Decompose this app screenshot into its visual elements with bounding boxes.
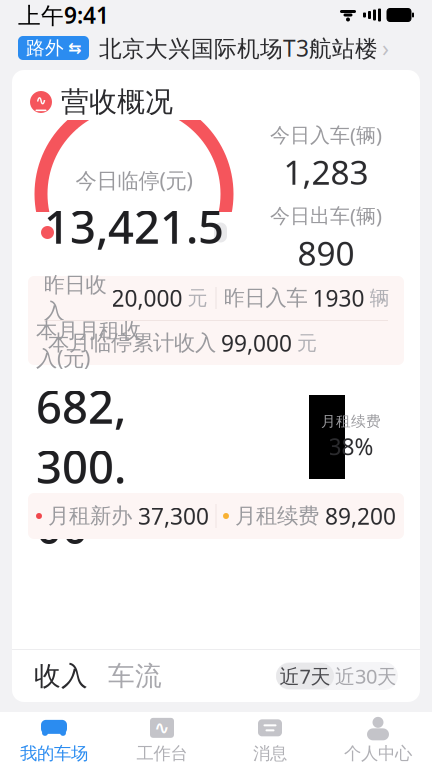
- staticText: 营收概况: [61, 85, 173, 119]
- staticText: 今日出车(辆): [270, 202, 382, 229]
- staticText: 昨日收入: [43, 272, 106, 324]
- button[interactable]: 路外: [18, 36, 89, 60]
- staticText: ∿: [35, 93, 46, 108]
- staticText: 上午9:41: [18, 0, 109, 30]
- staticText: 元: [297, 331, 317, 355]
- button[interactable]: 近30天: [334, 663, 398, 689]
- staticText: 个人中心: [344, 743, 412, 764]
- button[interactable]: 近7天: [276, 663, 334, 689]
- button[interactable]: 车流: [88, 660, 162, 692]
- staticText: 车流: [108, 660, 162, 692]
- staticText: 工作台: [136, 743, 187, 764]
- staticText: 消息: [253, 743, 287, 764]
- staticText: 本月月租收入(元): [36, 317, 141, 372]
- staticText: 38%: [328, 431, 373, 462]
- staticText: 1,283: [283, 150, 368, 194]
- staticText: 辆: [369, 286, 389, 310]
- button[interactable]: 北京大兴国际机场T3航站楼: [99, 33, 389, 63]
- staticText: 近30天: [335, 663, 397, 689]
- staticText: 月租续费: [235, 503, 319, 529]
- staticText: 89,200: [325, 501, 396, 531]
- button[interactable]: 消息: [216, 712, 324, 768]
- button[interactable]: 我的车场: [0, 712, 108, 768]
- staticText: 月租续费: [321, 412, 381, 430]
- staticText: 20,000: [111, 283, 182, 313]
- staticText: 元: [187, 286, 207, 310]
- staticText: 昨日入车: [223, 285, 307, 311]
- staticText: 890: [297, 231, 354, 275]
- staticText: 37,300: [138, 501, 209, 531]
- staticText: ∿: [154, 717, 170, 738]
- staticText: ›: [382, 33, 389, 63]
- staticText: 本月临停累计收入: [48, 330, 216, 356]
- button[interactable]: 收入: [34, 660, 88, 692]
- staticText: ⇆: [68, 39, 81, 57]
- staticText: 我的车场: [20, 743, 88, 764]
- staticText: 今日临停(元): [75, 166, 192, 194]
- staticText: 路外: [26, 36, 64, 59]
- staticText: 99,000: [221, 328, 292, 358]
- staticText: 13,421.5: [44, 196, 224, 256]
- staticText: 近7天: [279, 663, 330, 689]
- staticText: 今日入车(辆): [270, 121, 382, 148]
- button[interactable]: 个人中心: [324, 712, 432, 768]
- staticText: 1930: [312, 283, 364, 313]
- staticText: 收入: [34, 660, 88, 692]
- staticText: 月租新办: [48, 503, 132, 529]
- staticText: 北京大兴国际机场T3航站楼: [99, 33, 378, 63]
- button[interactable]: ∿: [108, 712, 216, 768]
- staticText: 682,300.00: [36, 376, 126, 557]
